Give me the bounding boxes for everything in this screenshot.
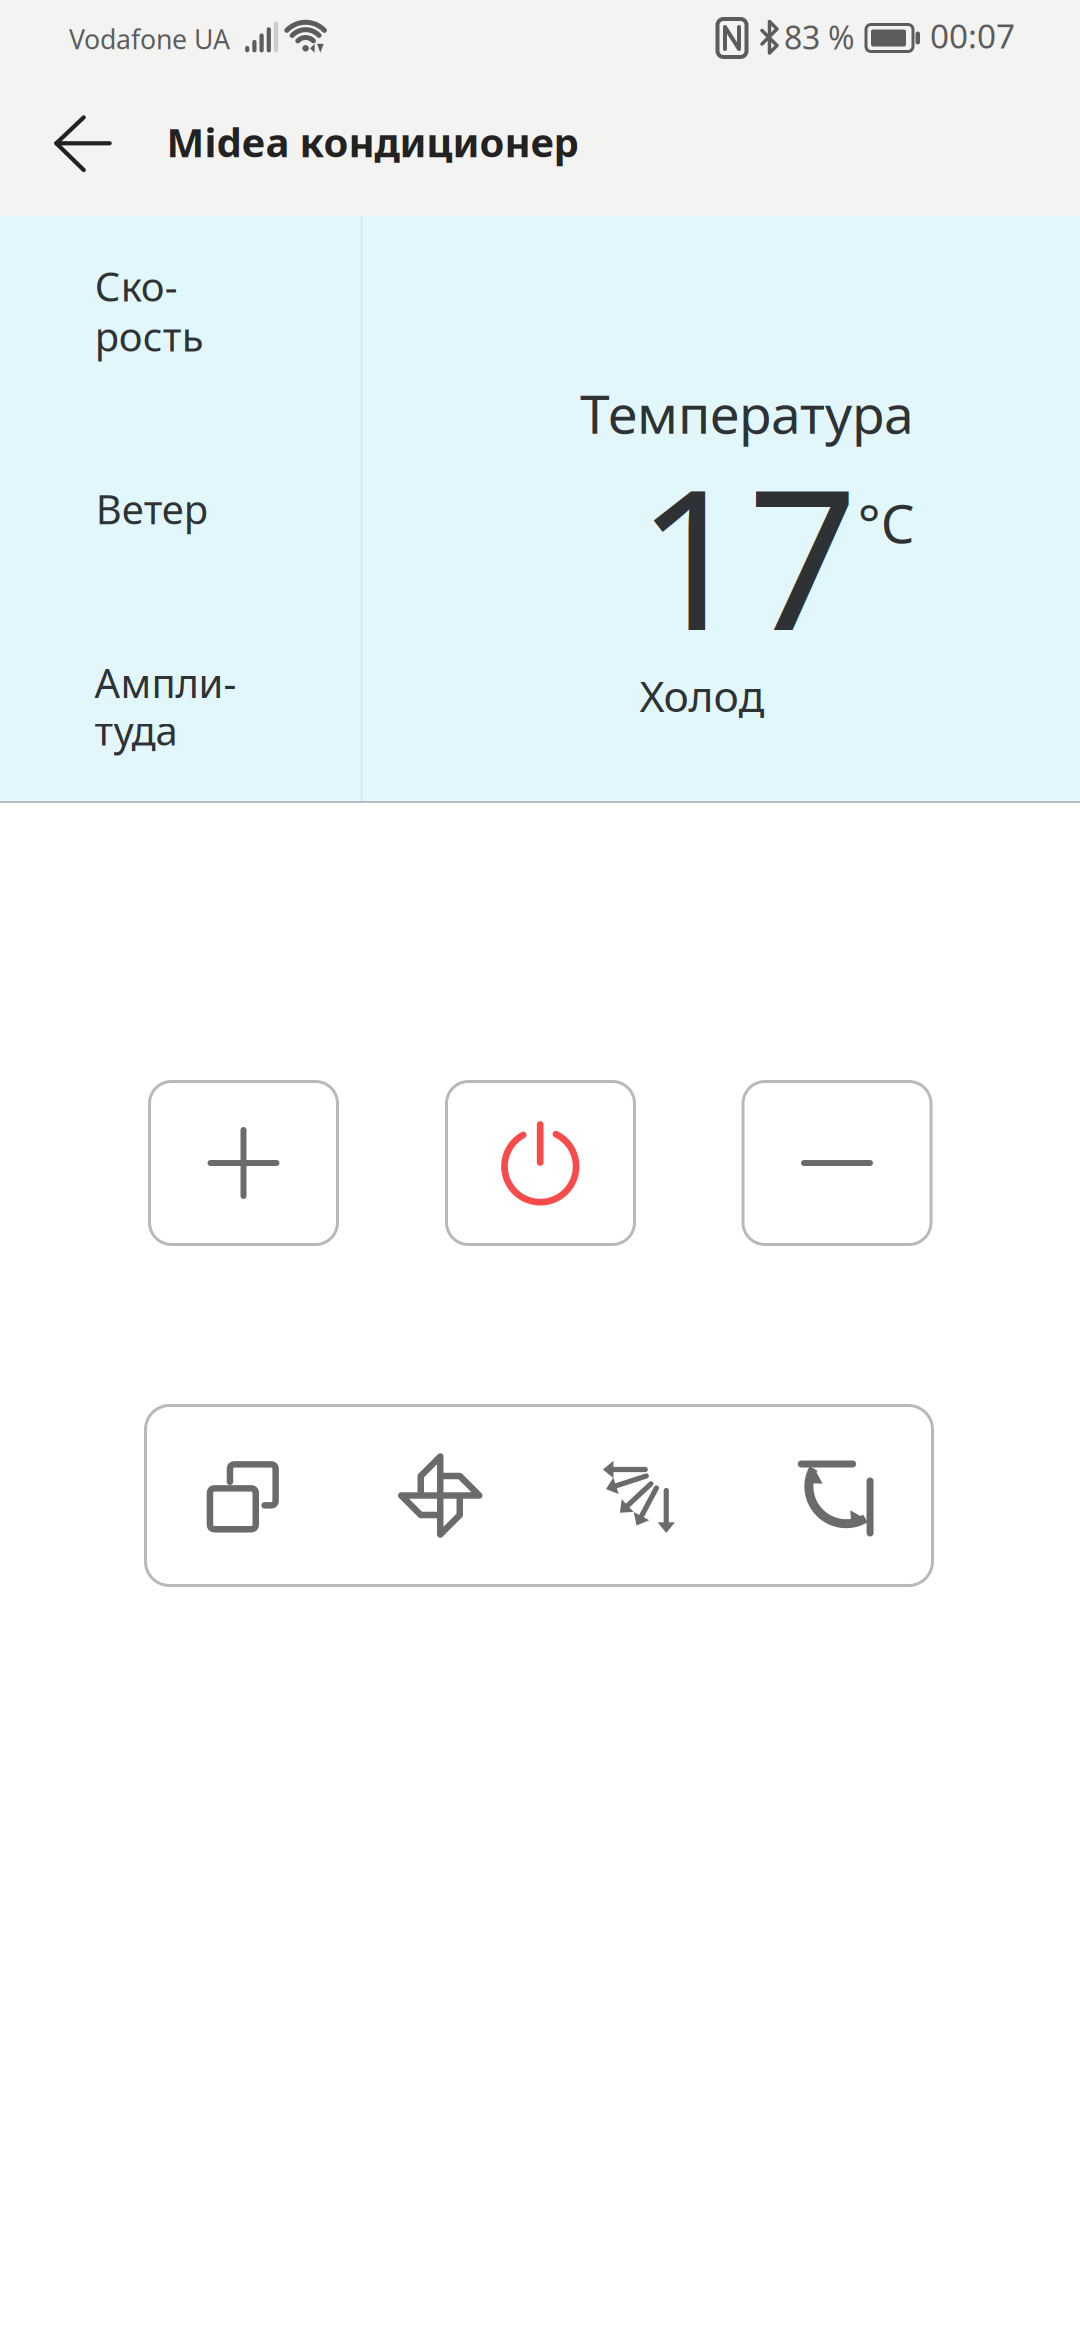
staticText: Температура	[580, 378, 914, 448]
button[interactable]: Swing	[539, 1404, 736, 1587]
staticText: 00:07	[930, 13, 1015, 58]
button[interactable]: Fan speed	[341, 1404, 539, 1587]
staticText: Vodafone UA	[69, 21, 230, 57]
button[interactable]: Rotate	[736, 1404, 934, 1587]
staticText: рость	[95, 309, 204, 362]
button[interactable]: Back	[17, 77, 149, 209]
button[interactable]: Decrease temperature	[741, 1080, 932, 1246]
staticText: 17	[637, 427, 859, 683]
staticText: Midea кондиционер	[167, 115, 579, 168]
staticText: Ампли-	[94, 656, 236, 709]
staticText: туда	[94, 703, 177, 756]
staticText: °C	[858, 487, 915, 558]
staticText: 83 %	[784, 16, 855, 58]
button[interactable]: Power	[445, 1080, 636, 1246]
button[interactable]: Increase temperature	[148, 1080, 339, 1246]
button[interactable]: Mode	[144, 1404, 341, 1587]
staticText: Ско-	[95, 259, 178, 312]
staticText: Ветер	[96, 482, 208, 535]
staticText: Холод	[639, 667, 764, 724]
